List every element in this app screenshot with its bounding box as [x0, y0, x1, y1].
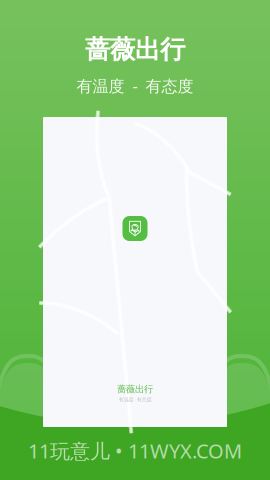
button[interactable]: 蔷薇出行 app icon: [122, 216, 147, 241]
staticText: 蔷薇出行: [85, 34, 185, 65]
staticText: 蔷薇出行: [117, 383, 153, 395]
staticText: 11玩意儿 • 11WYX.COM: [28, 437, 242, 464]
staticText: 有温度 - 有态度: [76, 75, 193, 96]
staticText: 有温度 · 有态度: [118, 396, 151, 403]
